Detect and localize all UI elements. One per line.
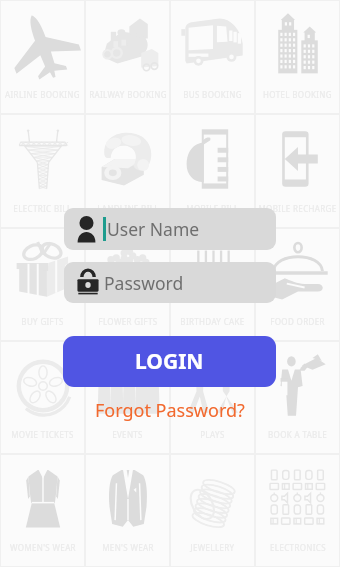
button[interactable]: ELECTRIC BILL	[1, 115, 84, 227]
button[interactable]: LANDLINE BILL	[86, 115, 169, 227]
staticText: MOVIE TICKETS	[11, 429, 74, 440]
staticText: User Name	[107, 217, 200, 241]
staticText: HOTEL BOOKING	[263, 89, 332, 100]
button[interactable]: FLOWER GIFTS	[86, 229, 169, 340]
staticText: AIRLINE BOOKING	[5, 89, 80, 100]
button[interactable]: FOOD ORDER	[256, 229, 339, 340]
staticText: BUY GIFTS	[21, 316, 64, 327]
button[interactable]: BUY GIFTS	[1, 229, 84, 340]
button[interactable]: MEN'S WEAR	[86, 455, 169, 566]
staticText: MEN'S WEAR	[102, 542, 154, 553]
button[interactable]: BOOK A TABLE	[256, 342, 339, 453]
staticText: EVENTS	[112, 429, 143, 440]
staticText: PLAYS	[200, 429, 225, 440]
staticText: FOOD ORDER	[270, 316, 325, 327]
button[interactable]: EVENTS	[86, 342, 169, 453]
staticText: JEWELLERY	[190, 542, 235, 553]
staticText: BUS BOOKING	[183, 89, 242, 100]
button[interactable]: PLAYS	[171, 342, 254, 453]
staticText: LOGIN	[135, 347, 204, 376]
staticText: ELECTRIC BILL	[13, 203, 72, 214]
staticText: WOMEN'S WEAR	[10, 542, 76, 553]
button[interactable]: Forgot Password?	[91, 394, 249, 427]
button[interactable]: RAILWAY BOOKING	[86, 1, 169, 113]
button[interactable]: User Name	[64, 208, 276, 250]
staticText: RAILWAY BOOKING	[89, 89, 167, 100]
button[interactable]: WOMEN'S WEAR	[1, 455, 84, 566]
button[interactable]: LOGIN	[63, 336, 276, 387]
staticText: BIRTHDAY CAKE	[180, 316, 245, 327]
staticText: ELECTRONICS	[270, 542, 326, 553]
staticText: MOBILE BILL	[186, 203, 239, 214]
button[interactable]: MOVIE TICKETS	[1, 342, 84, 453]
button[interactable]: ELECTRONICS	[256, 455, 339, 566]
staticText: MOBILE RECHARGE	[258, 203, 337, 214]
staticText: LANDLINE BILL	[97, 203, 159, 214]
button[interactable]: MOBILE BILL	[171, 115, 254, 227]
staticText: Password	[104, 271, 184, 295]
staticText: FLOWER GIFTS	[98, 316, 158, 327]
staticText: BOOK A TABLE	[268, 429, 327, 440]
button[interactable]: MOBILE RECHARGE	[256, 115, 339, 227]
button[interactable]: AIRLINE BOOKING	[1, 1, 84, 113]
button[interactable]: JEWELLERY	[171, 455, 254, 566]
button[interactable]: BIRTHDAY CAKE	[171, 229, 254, 340]
button[interactable]: Password	[64, 262, 276, 303]
button[interactable]: BUS BOOKING	[171, 1, 254, 113]
button[interactable]: HOTEL BOOKING	[256, 1, 339, 113]
